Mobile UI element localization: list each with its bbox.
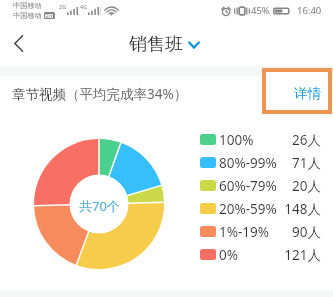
button[interactable]: 0% [200,243,321,266]
staticText: 共70个 [79,197,120,215]
staticText: 26人 [292,131,321,149]
button[interactable]: 详情 [266,72,328,110]
staticText: 销售班 [129,33,183,56]
staticText: （平均完成率34%） [66,85,188,103]
staticText: 1%-19% [219,223,269,241]
staticText: 60%-79% [219,177,277,195]
button[interactable]: 销售班 [125,29,204,60]
staticText: 详情 [294,85,321,102]
staticText: 90人 [292,223,321,241]
staticText: 中国移动 [13,11,42,20]
staticText: 20人 [292,177,321,195]
button[interactable]: Back [0,22,38,64]
staticText: 100% [219,131,254,149]
staticText: 2G [59,3,67,10]
button[interactable]: 20%-59% [200,197,321,220]
button[interactable]: 100% [200,128,321,151]
staticText: 45% [251,4,270,17]
staticText: HD [45,12,54,19]
button[interactable]: 1%-19% [200,220,321,243]
staticText: 0% [219,246,238,264]
staticText: 4G [80,3,88,10]
button[interactable]: 80%-99% [200,151,321,174]
staticText: 中国移动 [13,1,42,10]
staticText: 章节视频 [12,86,66,103]
staticText: 16:40 [297,4,322,17]
button[interactable]: 60%-79% [200,174,321,197]
staticText: 71人 [292,154,321,172]
staticText: 148人 [284,200,321,218]
staticText: 121人 [284,246,321,264]
staticText: 20%-59% [219,200,277,218]
staticText: 80%-99% [219,154,277,172]
